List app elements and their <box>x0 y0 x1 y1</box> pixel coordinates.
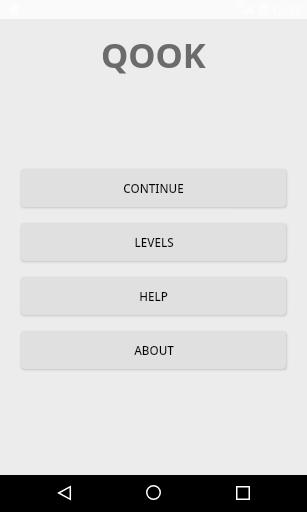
staticText: CONTINUE <box>123 180 184 196</box>
button[interactable]: Home <box>126 474 180 511</box>
staticText: QOOK <box>101 31 206 75</box>
staticText: LEVELS <box>134 234 174 250</box>
staticText: HELP <box>139 288 168 304</box>
staticText: ABOUT <box>134 342 174 358</box>
button[interactable]: CONTINUE <box>21 169 286 207</box>
button[interactable]: Recent apps <box>216 474 270 511</box>
button[interactable]: Back <box>37 474 91 511</box>
button[interactable]: ABOUT <box>21 331 286 369</box>
button[interactable]: HELP <box>21 277 286 315</box>
button[interactable]: LEVELS <box>21 223 286 261</box>
